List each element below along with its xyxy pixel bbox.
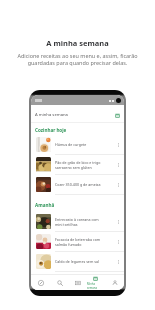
button[interactable]: Cozer 350-400 g de ameixa xyxy=(31,175,124,194)
staticText: Entrecosto à coreana com mini tortilhas xyxy=(55,217,115,227)
button[interactable]: More options xyxy=(115,238,122,245)
staticText: Cozer 350-400 g de ameixa xyxy=(55,182,115,187)
button[interactable]: Húmus de curgete xyxy=(31,135,124,154)
staticText: Húmus de curgete xyxy=(55,142,115,147)
button[interactable]: More options xyxy=(115,218,122,225)
button[interactable]: More options xyxy=(115,161,122,168)
staticText: Caldo de legumes sem sal xyxy=(55,259,115,264)
button[interactable]: Perfil xyxy=(106,280,123,286)
staticText: A minha semana xyxy=(0,38,155,48)
button[interactable]: Explorar xyxy=(32,280,49,286)
button[interactable]: Pão de grão de bico e trigo sarraceno se… xyxy=(31,155,124,174)
button[interactable]: More options xyxy=(115,258,122,265)
staticText: Focaccia de beterraba com salmão fumado xyxy=(55,237,115,247)
button[interactable]: Focaccia de beterraba com salmão fumado xyxy=(31,232,124,251)
staticText: A minha semana xyxy=(35,112,68,118)
button[interactable]: Livro de receitas xyxy=(69,280,86,286)
button[interactable]: Entrecosto à coreana com mini tortilhas xyxy=(31,212,124,231)
staticText: Adicione receitas ao seu menu e, assim, … xyxy=(0,52,155,66)
button[interactable]: Minha semana xyxy=(87,276,104,290)
button[interactable]: More options xyxy=(115,181,122,188)
button[interactable]: Pesquisar xyxy=(51,280,68,286)
staticText: Cozinhar hoje xyxy=(35,127,67,133)
staticText: Pão de grão de bico e trigo sarraceno se… xyxy=(55,160,115,170)
button[interactable]: Caldo de legumes sem sal xyxy=(31,252,124,271)
button[interactable]: More options xyxy=(115,141,122,148)
button[interactable]: Calendar xyxy=(113,111,121,119)
staticText: Amanhã xyxy=(35,202,55,208)
staticText: Minha semana xyxy=(87,282,104,290)
